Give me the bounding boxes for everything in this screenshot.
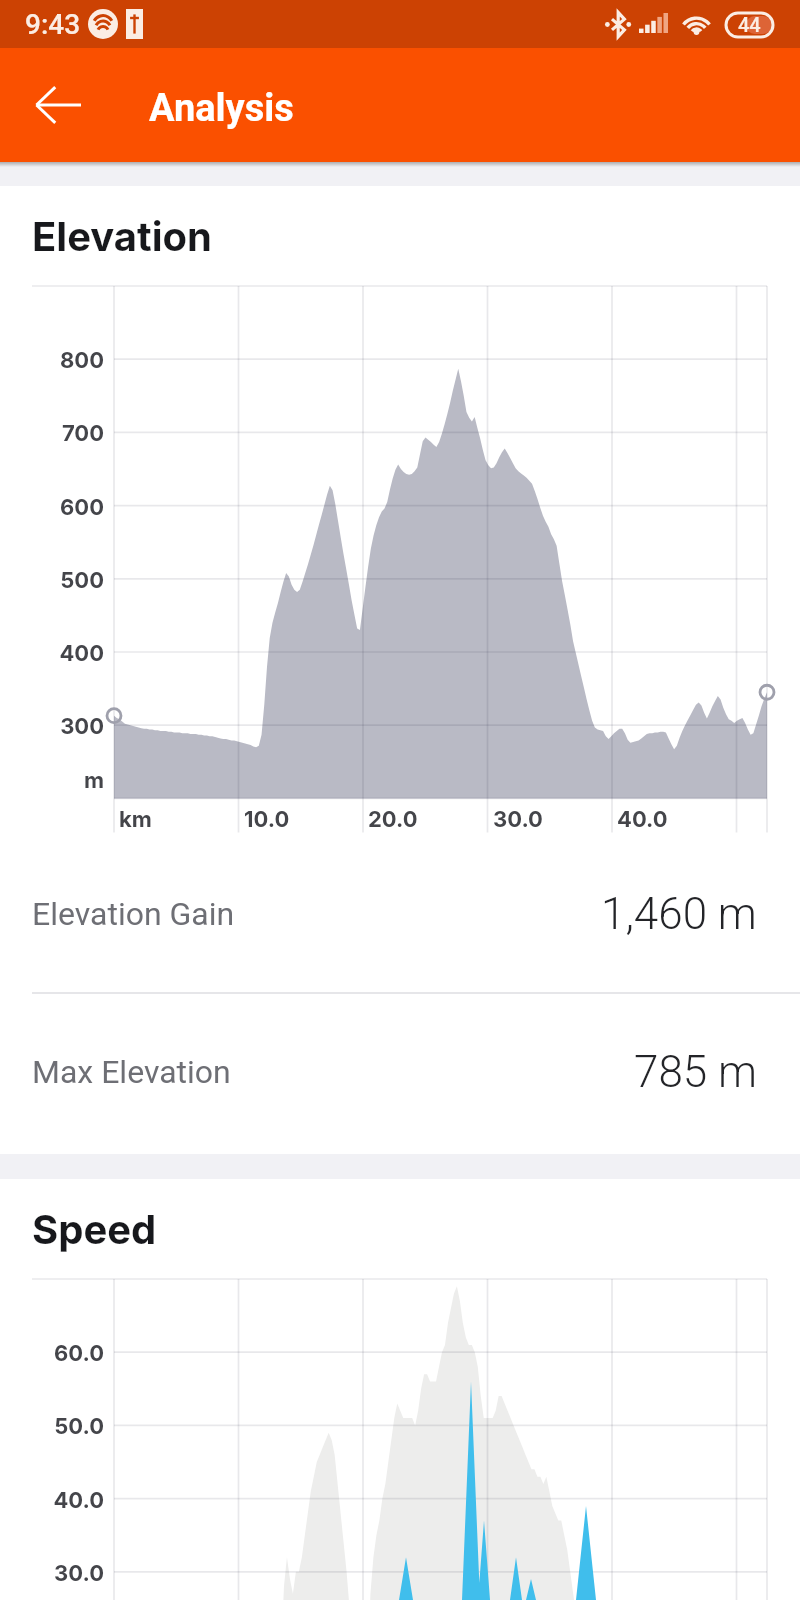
staticText: Elevation <box>32 212 212 260</box>
staticText: 700 <box>4 420 104 447</box>
button[interactable]: Elevation Gain <box>0 836 800 992</box>
staticText: 300 <box>4 713 104 740</box>
staticText: 30.0 <box>493 806 543 833</box>
staticText: 44 <box>738 13 761 36</box>
button[interactable]: Max Elevation <box>0 994 800 1150</box>
staticText: m <box>4 767 104 794</box>
staticText: Max Elevation <box>32 1053 231 1091</box>
staticText: 400 <box>4 640 104 667</box>
staticText: 60.0 <box>4 1340 104 1367</box>
staticText: 500 <box>4 567 104 594</box>
staticText: 50.0 <box>4 1413 104 1440</box>
staticText: Speed <box>32 1205 157 1253</box>
staticText: 40.0 <box>617 806 668 833</box>
staticText: 785 m <box>634 1046 757 1098</box>
staticText: km <box>119 806 152 833</box>
staticText: 800 <box>4 347 104 374</box>
staticText: 20.0 <box>368 806 418 833</box>
button[interactable]: Back <box>0 48 116 162</box>
staticText: Elevation Gain <box>32 895 235 933</box>
staticText: 30.0 <box>4 1560 104 1587</box>
staticText: 40.0 <box>4 1487 104 1514</box>
staticText: 1,460 m <box>601 888 757 940</box>
staticText: 10.0 <box>244 806 290 833</box>
staticText: Analysis <box>149 86 294 131</box>
staticText: 600 <box>4 494 104 521</box>
staticText: 9:43 <box>25 8 81 41</box>
